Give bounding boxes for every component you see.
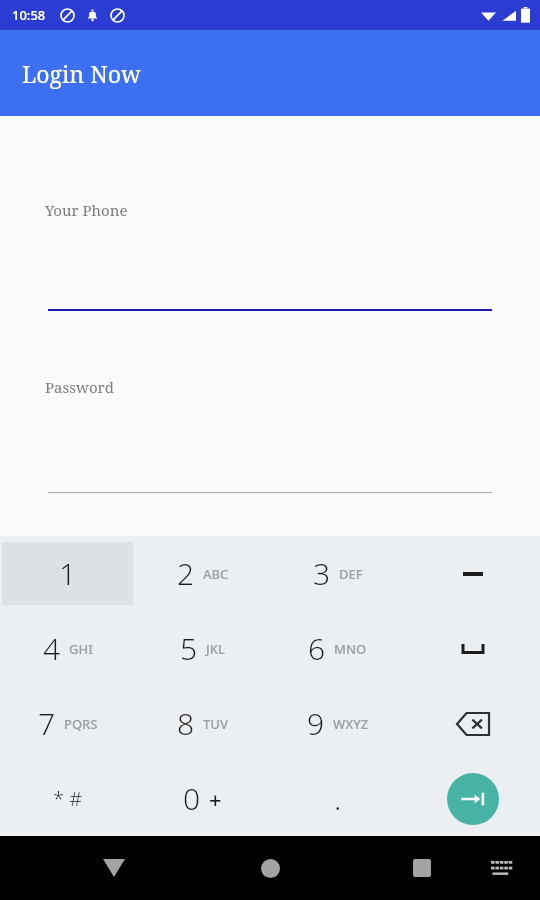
staticText: * # xyxy=(53,785,83,812)
button[interactable]: . xyxy=(270,761,405,836)
staticText: PQRS xyxy=(64,715,98,733)
staticText: Your Phone xyxy=(45,200,128,220)
staticText: 10:58 xyxy=(12,6,46,24)
staticText: TUV xyxy=(203,715,228,733)
staticText: WXYZ xyxy=(333,715,369,733)
button[interactable]: Home xyxy=(248,846,292,890)
button[interactable]: 7 xyxy=(0,686,135,761)
staticText: + xyxy=(209,784,222,814)
button[interactable]: 4 xyxy=(0,611,135,686)
staticText: 9 xyxy=(307,703,325,744)
button[interactable]: 2 xyxy=(135,536,270,611)
button[interactable]: 1 xyxy=(2,542,133,605)
staticText: 4 xyxy=(43,628,61,669)
staticText: GHI xyxy=(69,640,93,658)
button[interactable]: Switch keyboard xyxy=(482,848,522,888)
staticText: 0 xyxy=(183,778,201,819)
button[interactable]: 3 xyxy=(270,536,405,611)
staticText: 2 xyxy=(177,553,195,594)
button[interactable]: Enter xyxy=(447,773,499,825)
button[interactable]: 8 xyxy=(135,686,270,761)
button[interactable]: Space xyxy=(451,627,495,671)
staticText: 3 xyxy=(313,553,331,594)
staticText: MNO xyxy=(334,640,367,658)
staticText: 5 xyxy=(180,628,198,669)
staticText: 8 xyxy=(177,703,195,744)
button[interactable]: 9 xyxy=(270,686,405,761)
button[interactable]: Recents xyxy=(400,846,444,890)
staticText: Password xyxy=(45,377,114,397)
staticText: JKL xyxy=(206,640,225,658)
staticText: DEF xyxy=(339,565,363,583)
button[interactable]: 6 xyxy=(270,611,405,686)
button[interactable]: Back xyxy=(92,846,136,890)
staticText: Login Now xyxy=(22,58,141,89)
button[interactable]: 0 xyxy=(135,761,270,836)
staticText: . xyxy=(334,778,342,819)
button[interactable]: * # xyxy=(0,761,135,836)
button[interactable]: Minus xyxy=(451,552,495,596)
staticText: ABC xyxy=(203,565,229,583)
staticText: 6 xyxy=(308,628,326,669)
staticText: 1 xyxy=(59,553,77,594)
button[interactable]: Backspace xyxy=(447,698,499,750)
button[interactable]: 5 xyxy=(135,611,270,686)
staticText: 7 xyxy=(38,703,56,744)
